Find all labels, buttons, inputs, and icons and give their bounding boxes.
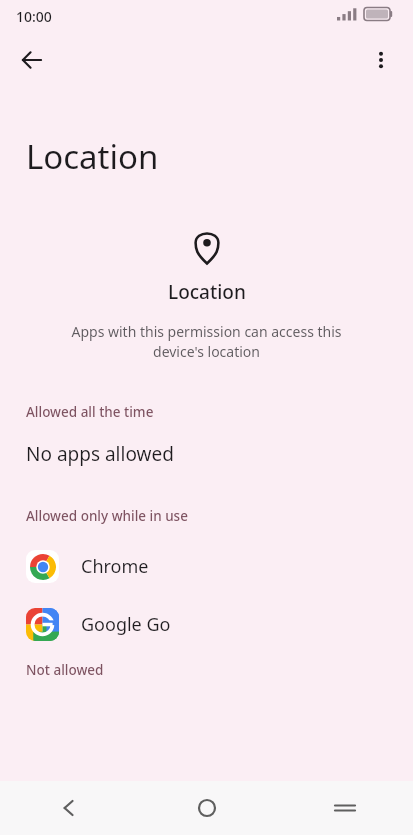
staticText: Not allowed xyxy=(26,661,104,679)
button[interactable]: Back xyxy=(0,781,137,835)
staticText: No apps allowed xyxy=(26,441,174,467)
button[interactable]: Back xyxy=(8,36,56,84)
staticText: Apps with this permission can access thi… xyxy=(54,322,359,361)
staticText: 10:00 xyxy=(16,7,52,26)
button[interactable]: More options xyxy=(357,36,405,84)
staticText: Google Go xyxy=(81,612,171,637)
button[interactable]: Recent apps xyxy=(276,781,413,835)
button[interactable]: Home xyxy=(138,781,275,835)
button[interactable]: Google Go xyxy=(0,595,413,653)
staticText: Location xyxy=(168,279,246,305)
staticText: Allowed all the time xyxy=(26,403,154,421)
staticText: Allowed only while in use xyxy=(26,507,188,525)
button[interactable]: Chrome xyxy=(0,537,413,595)
staticText: Location xyxy=(26,134,159,179)
staticText: Chrome xyxy=(81,554,149,579)
